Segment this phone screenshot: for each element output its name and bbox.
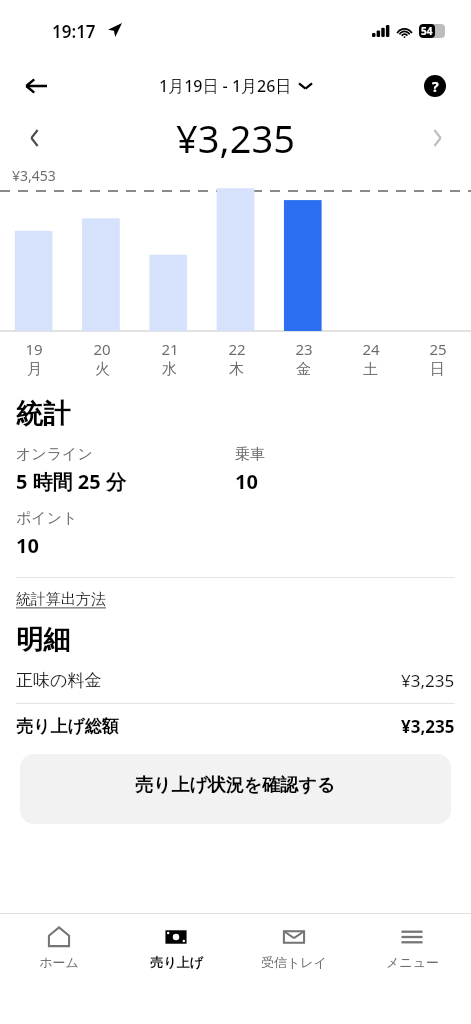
button[interactable]: 売り上げ状況を確認する: [20, 754, 451, 824]
staticText: 19:17: [52, 20, 96, 43]
staticText: 21: [161, 339, 179, 359]
staticText: メニュー: [386, 954, 439, 970]
button[interactable]: Back: [14, 64, 58, 108]
staticText: 25: [429, 339, 447, 359]
staticText: 売り上げ状況を確認する: [135, 774, 336, 797]
button[interactable]: メニュー: [353, 914, 471, 970]
staticText: 売り上げ: [150, 954, 203, 970]
staticText: 24: [362, 339, 380, 359]
staticText: 10: [235, 468, 258, 495]
staticText: 日: [430, 360, 445, 379]
staticText: ポイント: [16, 509, 78, 528]
button[interactable]: ホーム: [0, 914, 117, 970]
button[interactable]: 1月19日 - 1月26日: [151, 71, 320, 101]
staticText: ¥3,235: [176, 112, 295, 164]
button[interactable]: Previous week: [14, 118, 54, 158]
staticText: 54: [421, 24, 433, 38]
staticText: 乗車: [235, 445, 265, 464]
button[interactable]: 売り上げ: [117, 914, 235, 970]
button[interactable]: 受信トレイ: [235, 914, 353, 970]
staticText: 明細: [16, 623, 70, 657]
staticText: 売り上げ総額: [16, 716, 119, 737]
staticText: 5 時間 25 分: [16, 468, 126, 495]
staticText: ホーム: [39, 954, 79, 970]
staticText: 1月19日 - 1月26日: [159, 75, 292, 97]
staticText: 10: [16, 532, 39, 559]
staticText: オンライン: [16, 445, 93, 464]
staticText: 木: [229, 360, 244, 379]
staticText: 土: [363, 360, 378, 379]
staticText: 月: [27, 360, 42, 379]
button[interactable]: 統計算出方法: [16, 590, 106, 609]
button[interactable]: Help: [413, 64, 457, 108]
staticText: 22: [228, 339, 246, 359]
staticText: ¥3,453: [12, 166, 56, 185]
staticText: 20: [93, 339, 111, 359]
staticText: 19: [25, 339, 43, 359]
staticText: ?: [432, 77, 439, 96]
button[interactable]: Next week: [417, 118, 457, 158]
staticText: ¥3,235: [401, 715, 455, 738]
staticText: 受信トレイ: [261, 954, 327, 970]
staticText: 23: [295, 339, 313, 359]
staticText: ¥3,235: [401, 669, 455, 692]
staticText: 正味の料金: [16, 670, 102, 691]
staticText: 水: [162, 360, 177, 379]
staticText: 統計: [16, 397, 70, 431]
staticText: 統計算出方法: [16, 590, 106, 609]
staticText: 火: [95, 360, 110, 379]
staticText: 金: [296, 360, 311, 379]
